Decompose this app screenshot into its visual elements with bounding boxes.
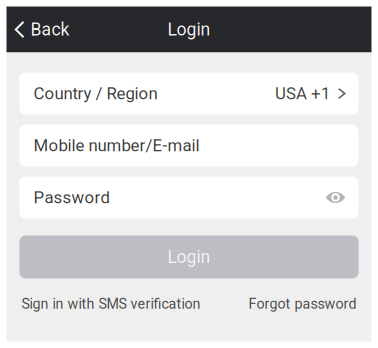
staticText: USA +1 bbox=[275, 84, 330, 103]
button[interactable]: Sign in with SMS verification bbox=[21, 295, 200, 312]
button[interactable]: Login bbox=[19, 235, 358, 278]
staticText: Forgot password bbox=[248, 295, 356, 312]
staticText: Password bbox=[33, 188, 109, 207]
staticText: Mobile number/E-mail bbox=[33, 136, 199, 155]
button[interactable]: Forgot password bbox=[248, 295, 356, 312]
staticText: Sign in with SMS verification bbox=[21, 295, 200, 312]
staticText: Back bbox=[30, 19, 69, 40]
staticText: Country / Region bbox=[33, 84, 157, 103]
staticText: Login bbox=[167, 19, 210, 40]
staticText: Login bbox=[167, 247, 210, 267]
button[interactable]: Back bbox=[6, 6, 81, 52]
